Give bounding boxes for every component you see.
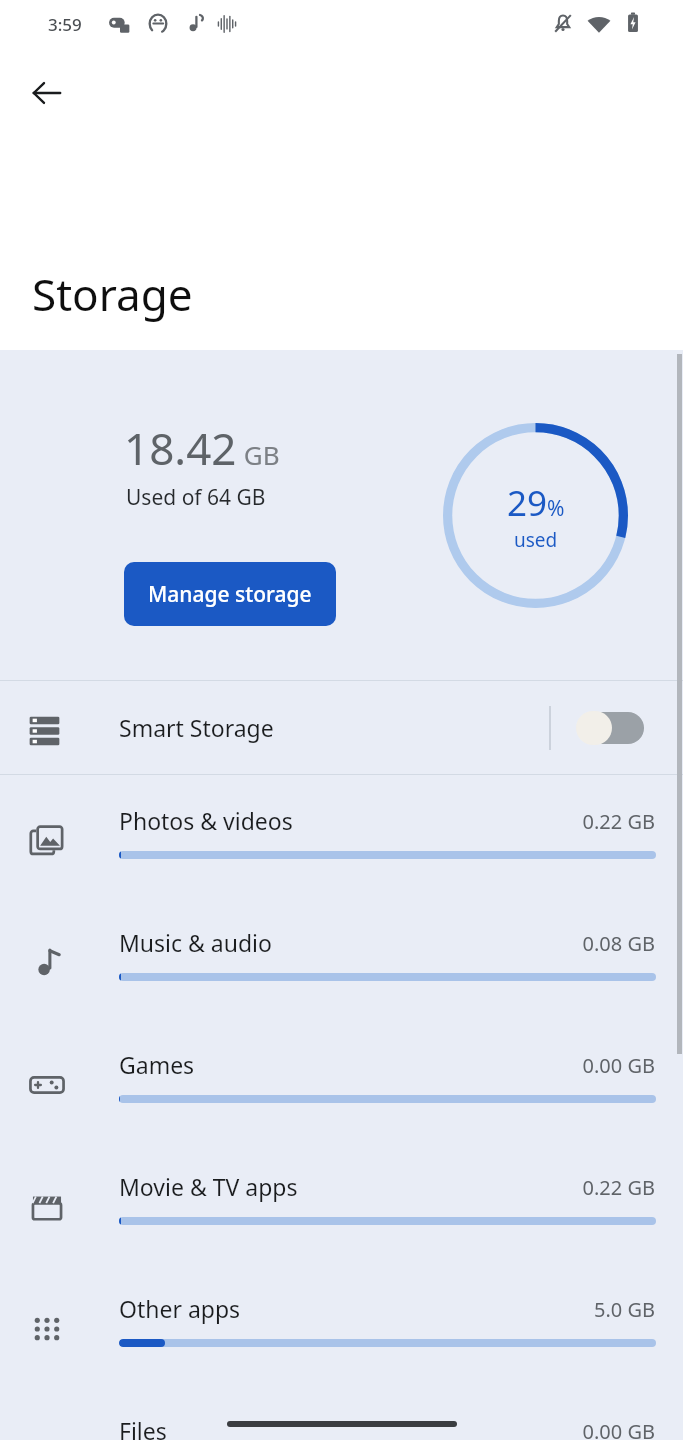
staticText: Storage (32, 264, 193, 324)
staticText: 29% (507, 479, 565, 527)
staticText: used (514, 527, 558, 553)
staticText: 0.22 GB (0, 808, 655, 835)
button[interactable]: Files (0, 1385, 683, 1440)
staticText: 5.0 GB (0, 1296, 655, 1323)
staticText: Movie & TV apps (119, 1171, 298, 1202)
staticText: Other apps (119, 1293, 241, 1324)
staticText: 0.00 GB (0, 1052, 655, 1079)
staticText: Photos & videos (119, 805, 293, 836)
staticText: Files (119, 1415, 167, 1440)
button[interactable]: Back (18, 64, 76, 122)
staticText: 0.08 GB (0, 930, 655, 957)
button[interactable]: Games (0, 1019, 683, 1141)
button[interactable]: Other apps (0, 1263, 683, 1385)
button[interactable]: Movie & TV apps (0, 1141, 683, 1263)
button[interactable]: Music & audio (0, 897, 683, 1019)
button[interactable]: Smart Storage toggle (576, 711, 648, 745)
staticText: Games (119, 1049, 195, 1080)
button[interactable]: Photos & videos (0, 775, 683, 897)
staticText: 18.42 GB (124, 418, 280, 478)
staticText: 0.00 GB (0, 1418, 655, 1440)
staticText: Music & audio (119, 927, 272, 958)
staticText: 0.22 GB (0, 1174, 655, 1201)
button[interactable]: Manage storage (124, 562, 336, 626)
button[interactable]: Smart Storage (0, 681, 683, 774)
staticText: 3:59 (48, 13, 82, 36)
staticText: Manage storage (148, 580, 312, 609)
staticText: Used of 64 GB (126, 483, 266, 512)
staticText: Smart Storage (119, 712, 274, 743)
